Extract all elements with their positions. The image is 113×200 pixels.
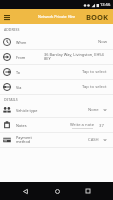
button[interactable]: When (0, 35, 113, 50)
staticText: When (16, 40, 27, 45)
button[interactable]: Open navigation menu (2, 12, 12, 22)
staticText: 13:56 (100, 2, 111, 8)
staticText: DETAILS (4, 97, 18, 102)
button[interactable]: BOOK (83, 9, 113, 24)
staticText: From (16, 55, 26, 60)
staticText: Notes (16, 123, 27, 128)
button[interactable]: Recent apps (81, 184, 95, 198)
staticText: ADDRESS (4, 27, 20, 32)
staticText: Write a note (70, 122, 95, 128)
staticText: None (88, 107, 99, 113)
button[interactable]: Back (18, 184, 32, 198)
staticText: Tap to select (82, 84, 107, 90)
staticText: BOOK (86, 12, 109, 21)
staticText: To (16, 70, 21, 75)
button[interactable]: Notes (0, 118, 113, 133)
staticText: Via (16, 85, 22, 90)
staticText: 36 Barclay Way, Livingston, EH54 8EY (44, 52, 107, 62)
staticText: CASH (88, 137, 99, 143)
staticText: 37 (99, 123, 104, 129)
button[interactable]: From (0, 50, 113, 65)
button[interactable]: Home (50, 184, 64, 198)
staticText: Tap to select (82, 69, 107, 75)
button[interactable]: Vehicle type (0, 103, 113, 118)
staticText: Network Private Hire (38, 14, 76, 19)
button[interactable]: Payment method (0, 133, 113, 148)
staticText: Vehicle type (16, 108, 38, 113)
staticText: Now (98, 39, 107, 45)
button[interactable]: Via (0, 80, 113, 95)
button[interactable]: To (0, 65, 113, 80)
staticText: Payment method (16, 135, 32, 145)
